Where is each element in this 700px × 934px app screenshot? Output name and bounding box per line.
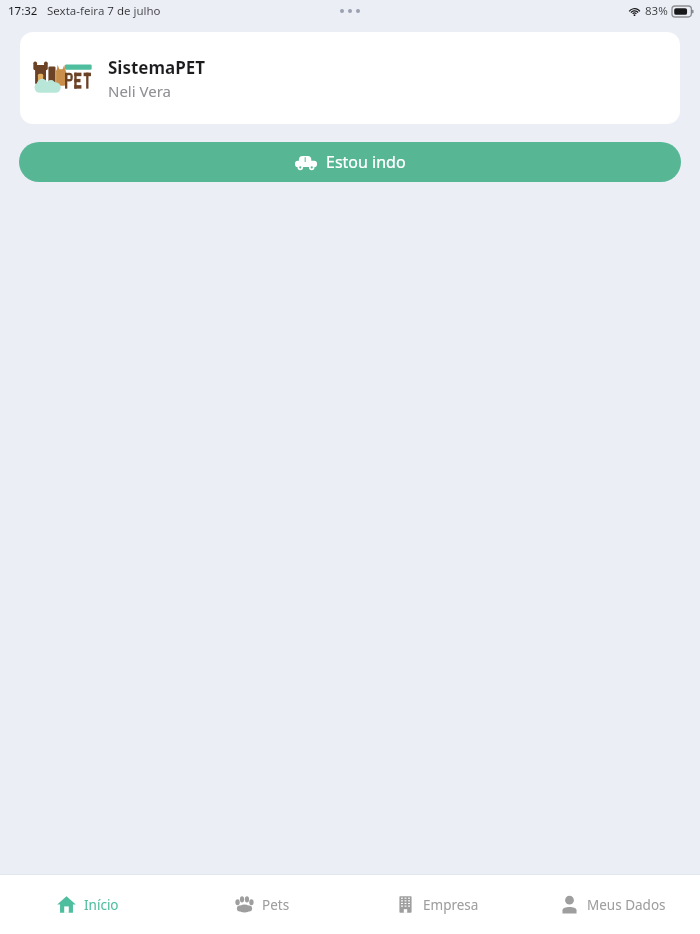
button[interactable]: Estou indo (19, 142, 681, 182)
staticText: Meus Dados (587, 896, 666, 914)
staticText: Estou indo (326, 151, 406, 173)
staticText: Sexta-feira 7 de julho (47, 3, 161, 19)
button[interactable]: Início (0, 875, 175, 934)
staticText: Pets (262, 896, 290, 914)
staticText: SistemaPET (108, 56, 206, 79)
staticText: 83% (645, 3, 668, 19)
staticText: Empresa (423, 896, 479, 914)
button[interactable]: Pets (175, 875, 350, 934)
button[interactable]: SistemaPET (20, 32, 680, 124)
staticText: Início (84, 896, 119, 914)
button[interactable]: Empresa (350, 875, 525, 934)
button[interactable]: Meus Dados (525, 875, 700, 934)
staticText: Neli Vera (108, 81, 171, 101)
staticText: 17:32 (8, 3, 38, 19)
